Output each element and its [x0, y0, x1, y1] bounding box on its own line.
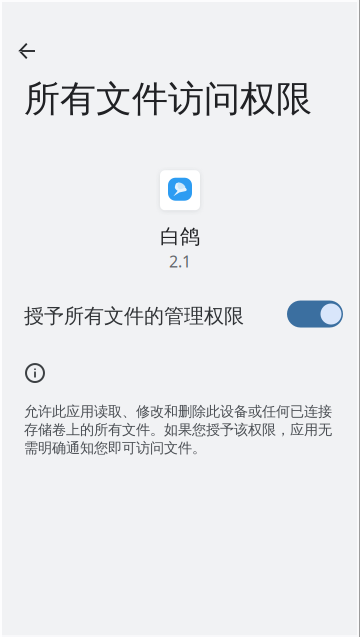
button[interactable]: Back — [0, 0, 52, 75]
staticText: 2.1 — [169, 251, 191, 272]
staticText: 授予所有文件的管理权限 — [24, 304, 244, 328]
staticText: 允许此应用读取、修改和删除此设备或任何已连接存储卷上的所有文件。如果您授予该权限… — [24, 402, 332, 457]
button[interactable]: 授予所有文件的管理权限 — [0, 289, 360, 339]
staticText: 所有文件访问权限 — [24, 77, 312, 121]
staticText: 白鸽 — [160, 224, 200, 249]
